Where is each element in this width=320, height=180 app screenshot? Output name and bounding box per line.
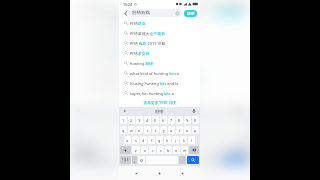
button[interactable]: Clear — [175, 11, 180, 16]
button[interactable]: 狩猎 电影 2019 完整 — [71, 38, 250, 48]
button[interactable]: what kind of hunting licens — [119, 68, 200, 78]
button[interactable]: v — [156, 146, 171, 154]
button[interactable]: 9 — [184, 116, 191, 124]
button[interactable]: , — [132, 156, 137, 164]
button[interactable]: ?123 — [73, 156, 98, 164]
button[interactable]: h — [164, 136, 171, 144]
button[interactable]: l — [224, 136, 240, 144]
button[interactable]: 3 — [109, 116, 124, 124]
button[interactable]: m — [209, 146, 224, 154]
button[interactable]: p — [192, 126, 199, 134]
button[interactable]: Back — [132, 169, 141, 178]
button[interactable]: Clear — [195, 11, 207, 16]
button[interactable]: u — [180, 126, 195, 134]
button[interactable]: Emoji — [138, 156, 145, 164]
button[interactable]: t — [144, 126, 160, 134]
button[interactable]: Search — [222, 156, 249, 164]
button[interactable]: Recents — [178, 169, 187, 178]
button[interactable]: hlusing hunting kits and le — [119, 78, 200, 88]
button[interactable]: r — [144, 126, 151, 134]
button[interactable]: 7 — [168, 116, 175, 124]
button[interactable]: 狩猎群岛 — [71, 18, 250, 28]
button[interactable]: i — [198, 126, 213, 134]
button[interactable]: Expand suggestions — [122, 108, 128, 114]
button[interactable]: h — [171, 136, 187, 144]
button[interactable]: e — [109, 126, 124, 134]
button[interactable]: j — [189, 136, 204, 144]
button[interactable]: y — [162, 126, 178, 134]
button[interactable]: ?123 — [120, 156, 131, 164]
button[interactable]: y — [160, 126, 167, 134]
button[interactable]: x — [120, 146, 135, 154]
button[interactable]: m — [181, 146, 188, 154]
button[interactable]: what kind of hunting licens — [71, 68, 250, 78]
button[interactable]: x — [141, 146, 148, 154]
button[interactable]: d — [118, 136, 133, 144]
button[interactable]: r — [127, 126, 142, 134]
button[interactable]: a — [124, 136, 131, 144]
button[interactable]: Space — [131, 156, 202, 164]
button[interactable]: Recents — [202, 169, 222, 178]
button[interactable]: f — [148, 136, 155, 144]
button[interactable]: o — [184, 126, 191, 134]
button[interactable]: 8 — [198, 116, 213, 124]
button[interactable]: a — [82, 136, 98, 144]
button[interactable]: 搜索 — [215, 10, 244, 17]
button[interactable]: Home — [155, 169, 164, 178]
button[interactable]: f — [136, 136, 151, 144]
button[interactable]: z — [132, 146, 140, 154]
button[interactable]: 搜索 — [184, 10, 197, 17]
button[interactable]: 6 — [160, 116, 167, 124]
button[interactable]: n — [173, 146, 180, 154]
button[interactable]: u — [168, 126, 175, 134]
button[interactable]: hunting 翻译 — [119, 58, 200, 68]
button[interactable]: l — [188, 136, 195, 144]
button[interactable]: . — [179, 156, 186, 164]
button[interactable]: q — [120, 126, 127, 134]
button[interactable]: hlusing hunting kits and le — [71, 78, 250, 88]
button[interactable]: i — [176, 126, 183, 134]
button[interactable]: 狩猎游戏大全下载装 — [119, 28, 200, 38]
button[interactable]: k — [180, 136, 187, 144]
button[interactable]: v — [157, 146, 164, 154]
button[interactable]: Backspace — [189, 146, 199, 154]
button[interactable]: w — [128, 126, 135, 134]
button[interactable]: super fun hunting kits a — [119, 88, 200, 98]
button[interactable]: 查看更多“狩猎”相关 — [124, 100, 200, 105]
button[interactable]: . — [204, 156, 220, 164]
button[interactable]: c — [149, 146, 156, 154]
button[interactable]: 狩猎群岛 — [119, 18, 200, 28]
button[interactable]: Voice input — [191, 108, 197, 114]
button[interactable]: 5 — [152, 116, 159, 124]
button[interactable]: c — [138, 146, 153, 154]
button[interactable]: 狩猎游戏大全下载装 — [71, 28, 250, 38]
button[interactable]: 狩猎者女神 — [71, 48, 250, 58]
button[interactable]: 狩猎 电影 2019 完整 — [119, 38, 200, 48]
button[interactable]: 6 — [162, 116, 178, 124]
button[interactable]: Back — [121, 9, 129, 17]
button[interactable]: g — [153, 136, 169, 144]
button[interactable]: b — [173, 146, 189, 154]
button[interactable]: 4 — [144, 116, 151, 124]
button[interactable]: Search — [187, 156, 199, 164]
button[interactable]: 狩猎游戏 — [93, 9, 211, 17]
button[interactable]: 1 — [120, 116, 127, 124]
button[interactable]: 狩猎者女神 — [119, 48, 200, 58]
button[interactable]: n — [191, 146, 207, 154]
button[interactable]: 狩猎游戏 — [129, 9, 182, 17]
button[interactable]: j — [172, 136, 179, 144]
